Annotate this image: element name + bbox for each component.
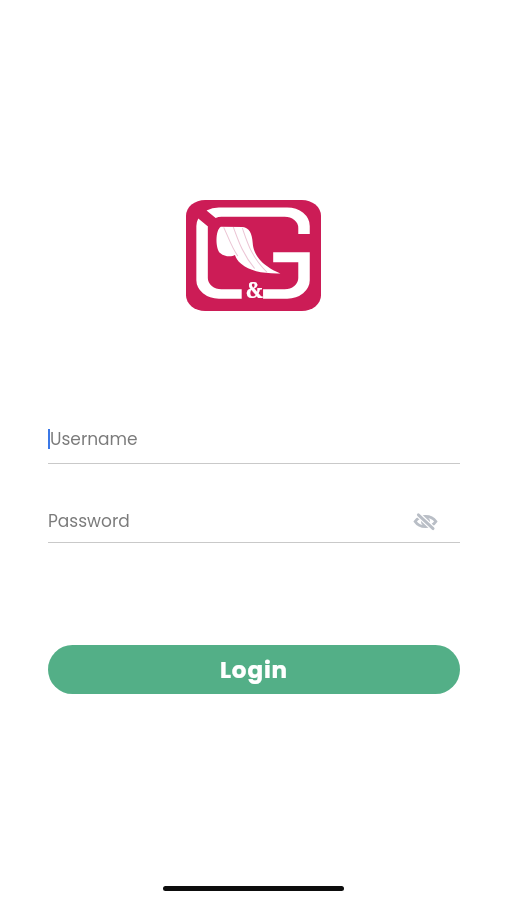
staticText: & bbox=[246, 276, 263, 305]
staticText: Login bbox=[220, 654, 289, 686]
staticText: Password bbox=[48, 509, 130, 533]
button[interactable]: Show password bbox=[410, 506, 440, 536]
button[interactable]: Login bbox=[48, 645, 460, 694]
staticText: Username bbox=[50, 427, 138, 451]
